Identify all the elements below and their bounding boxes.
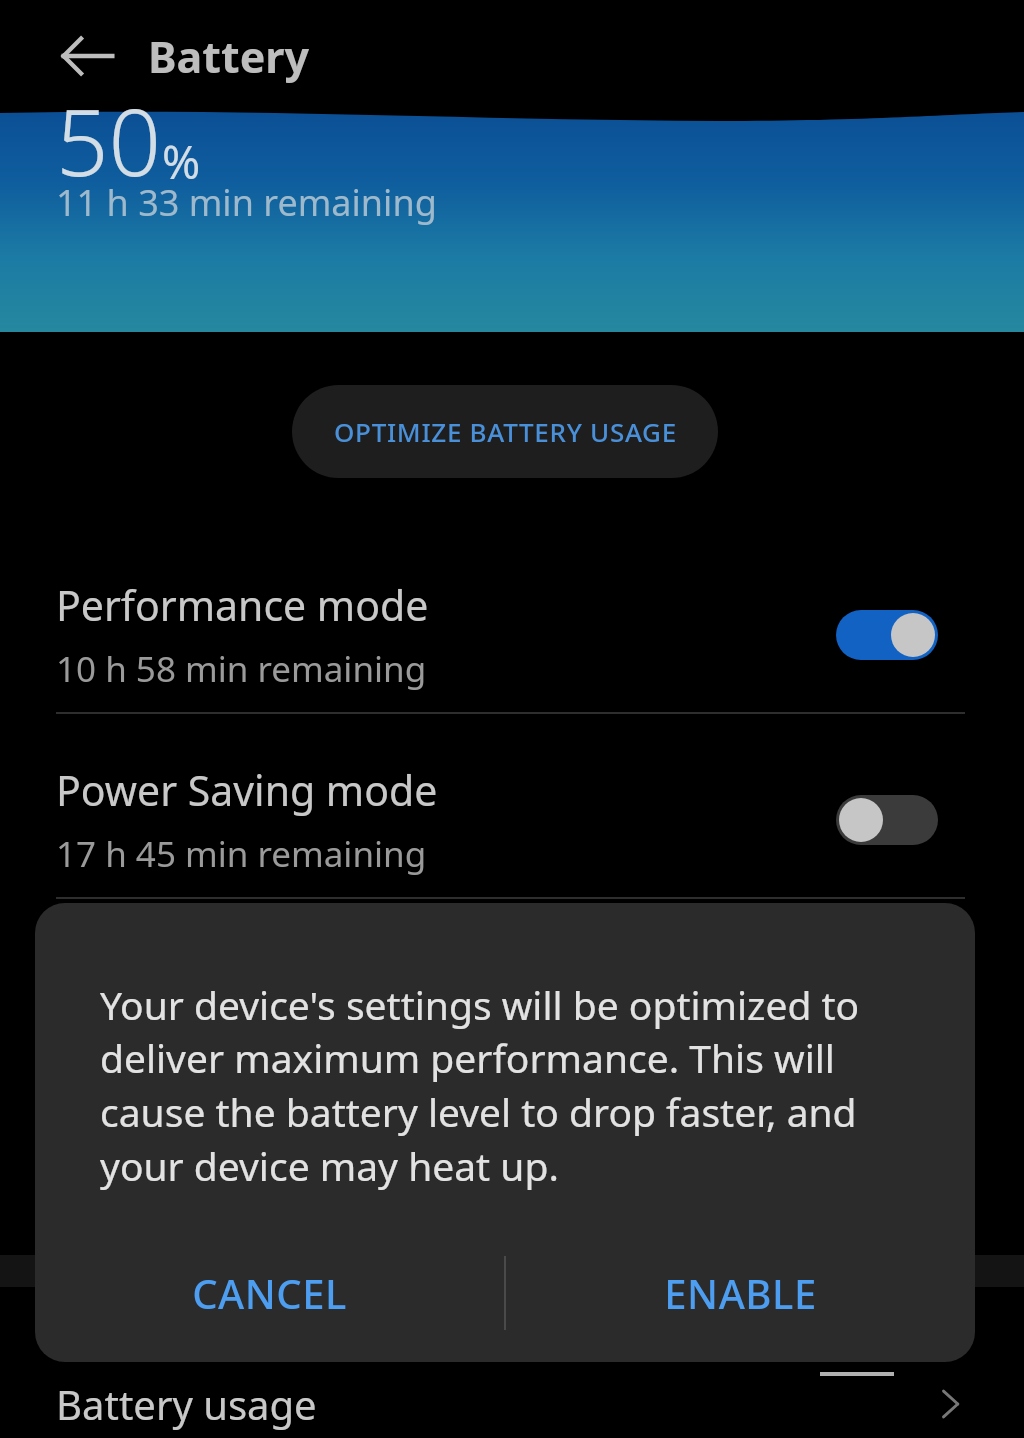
button[interactable]: Battery usage [0,1370,1024,1438]
staticText: Battery [148,27,310,86]
button[interactable]: Power Saving mode [0,745,1024,895]
staticText: CANCEL [192,1266,347,1320]
button[interactable]: CANCEL [35,1243,504,1343]
staticText: Battery usage [56,1377,317,1431]
staticText: Your device's settings will be optimized… [100,978,912,1193]
staticText: 11 h 33 min remaining [56,178,437,227]
button[interactable]: Off [836,795,938,845]
button[interactable]: OPTIMIZE BATTERY USAGE [292,385,718,478]
staticText: 10 h 58 min remaining [56,645,427,693]
staticText: % [162,130,201,193]
staticText: Power Saving mode [56,762,438,818]
staticText: Performance mode [56,577,429,633]
staticText: 50 [56,78,162,203]
button[interactable]: Performance mode [0,560,1024,710]
staticText: ENABLE [664,1266,817,1320]
staticText: 17 h 45 min remaining [56,830,427,878]
button[interactable]: On [836,610,938,660]
staticText: OPTIMIZE BATTERY USAGE [334,414,677,449]
button[interactable]: ENABLE [506,1243,975,1343]
button[interactable]: Back [44,12,132,100]
